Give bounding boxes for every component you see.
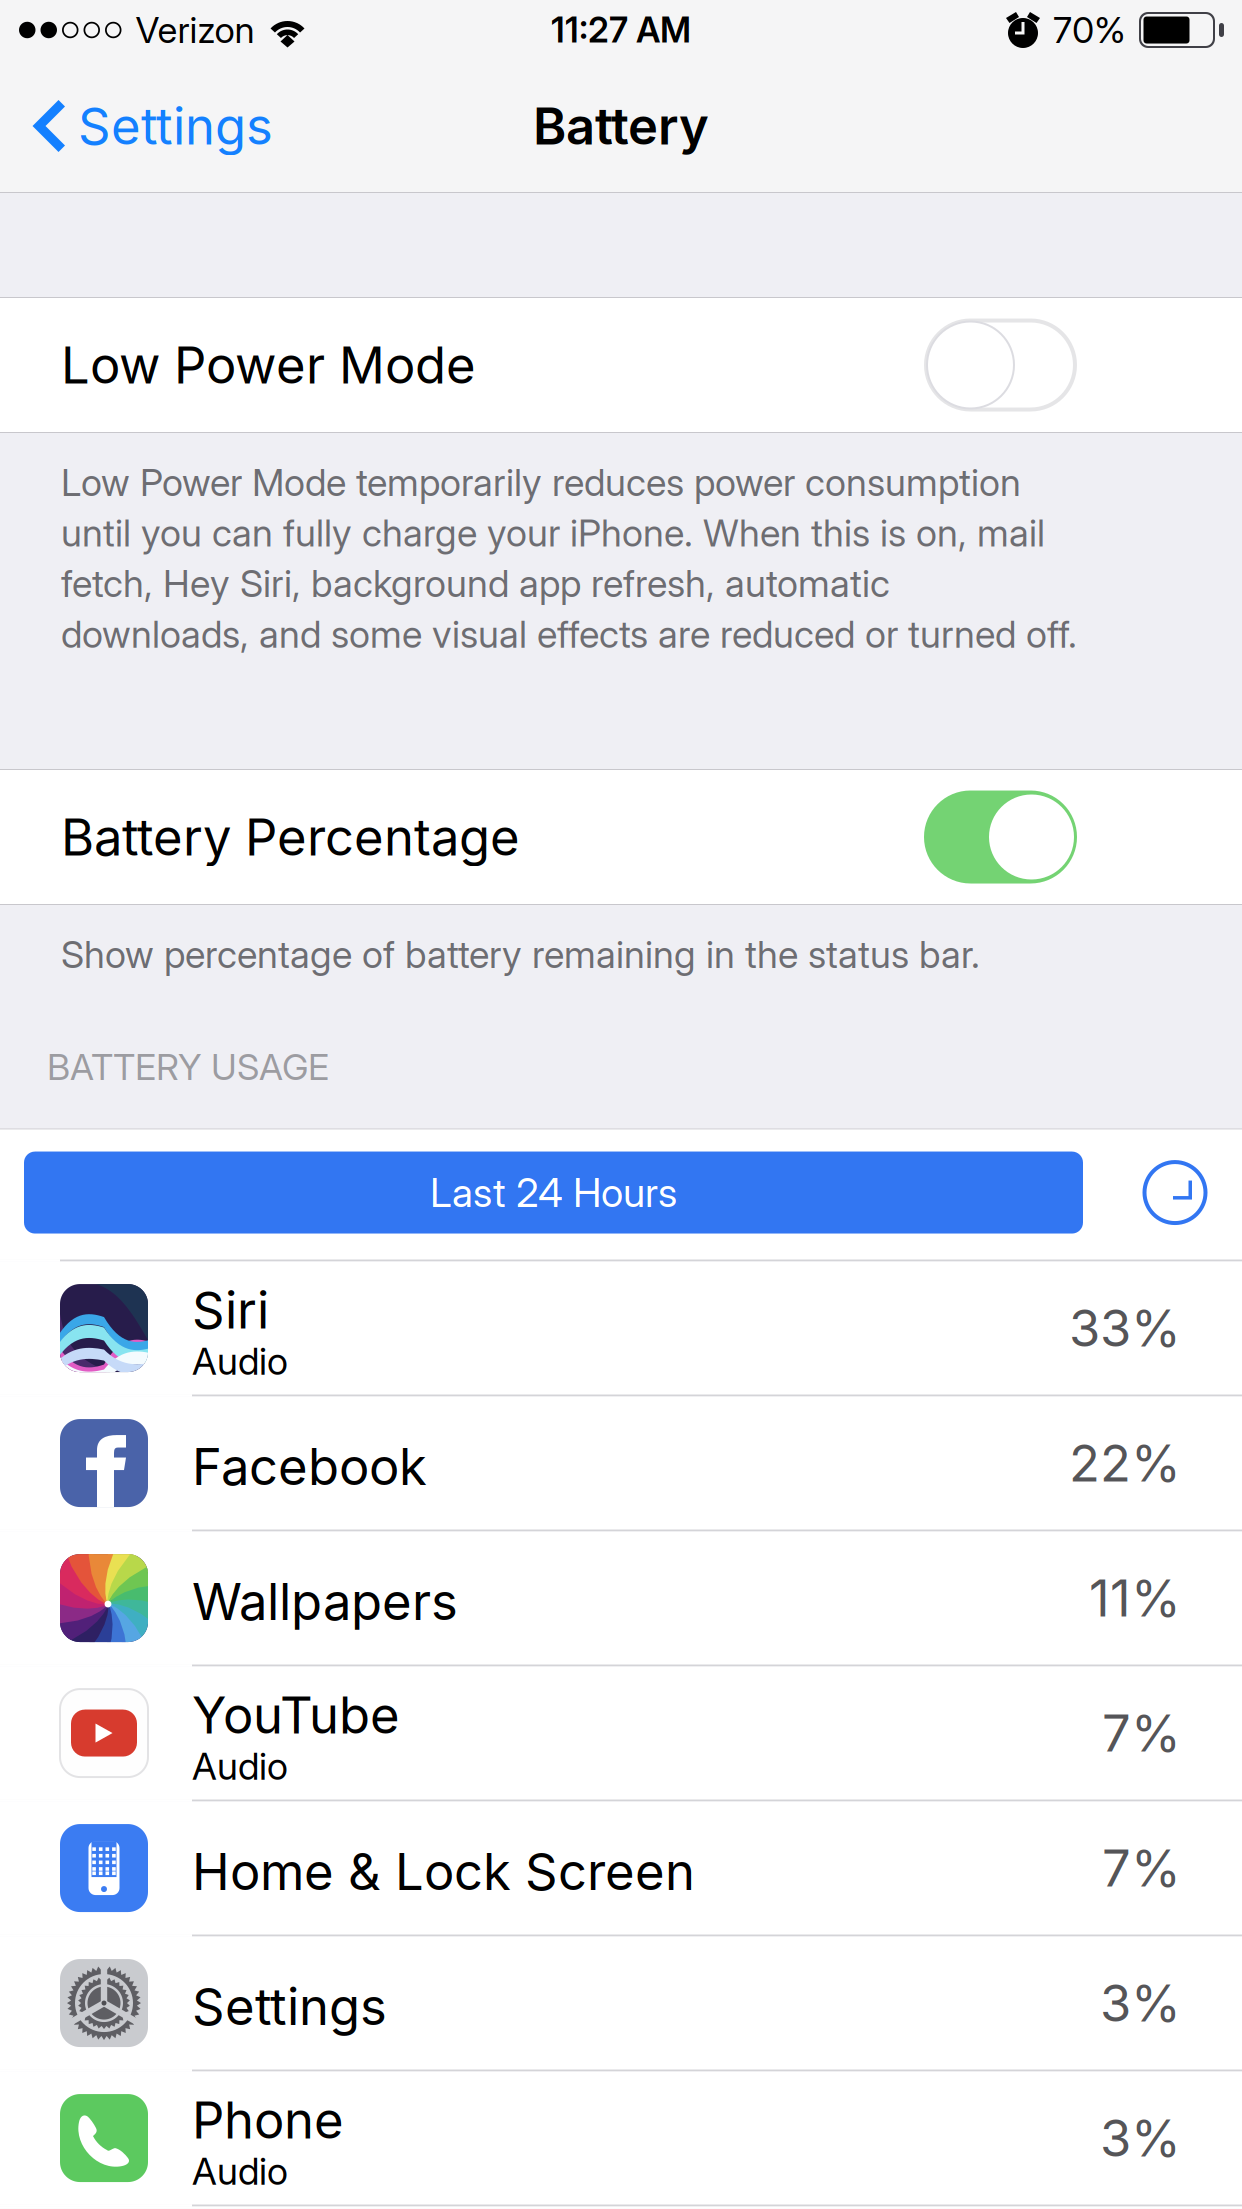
staticText: Settings [192,1976,387,2037]
staticText: Siri [192,1279,269,1341]
staticText: Low Power Mode [61,334,476,396]
button[interactable]: Home & Lock Screen [0,1802,1242,1935]
staticText: YouTube [192,1684,400,1746]
staticText: Audio [192,2149,288,2194]
button[interactable]: Phone [0,2072,1242,2205]
staticText: Settings [78,95,273,157]
button[interactable]: Facebook [0,1397,1242,1530]
button[interactable]: Wallpapers [0,1532,1242,1665]
staticText: 7% [1102,1837,1181,1899]
staticText: 70% [1053,8,1126,52]
staticText: Battery [533,95,709,157]
staticText: 22% [1069,1432,1181,1494]
staticText: 11:27 AM [551,9,691,51]
staticText: 7% [1102,1702,1181,1764]
staticText: 11% [1089,1567,1181,1629]
staticText: Show percentage of battery remaining in … [61,929,980,980]
button[interactable]: Siri [0,1262,1242,1395]
staticText: BATTERY USAGE [47,1045,329,1089]
staticText: Home & Lock Screen [192,1841,695,1902]
button[interactable]: YouTube [0,1667,1242,1800]
staticText: 3% [1100,2107,1181,2169]
staticText: Wallpapers [192,1571,458,1632]
staticText: Audio [192,1744,288,1789]
staticText: Audio [192,1339,288,1384]
button[interactable]: Low Power Mode [0,298,1242,432]
staticText: Verizon [135,8,254,52]
staticText: Last 24 Hours [430,1168,677,1217]
staticText: 3% [1100,1972,1181,2034]
button[interactable]: Last 24 Hours [24,1152,1083,1234]
staticText: Facebook [192,1436,427,1497]
button[interactable]: Battery Percentage [0,770,1242,904]
staticText: 33% [1069,1297,1181,1359]
staticText: Low Power Mode temporarily reduces power… [61,457,1077,659]
button[interactable] [1135,1152,1215,1234]
staticText: Phone [192,2089,344,2151]
staticText: Battery Percentage [61,806,520,868]
button[interactable]: Settings [0,1937,1242,2070]
button[interactable]: Settings [0,60,293,192]
